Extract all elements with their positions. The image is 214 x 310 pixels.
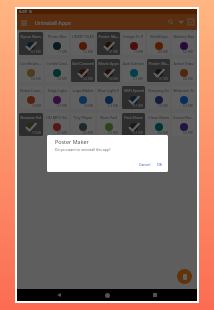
button[interactable]: Apk Extractor [122,59,145,82]
button[interactable]: Tiny Player [71,113,95,136]
button[interactable]: Sleeping So... [147,86,170,109]
staticText: 5.5 MB [183,104,193,108]
staticText: Clean Master [148,115,169,120]
staticText: Fast Share [124,115,143,120]
staticText: Battery Boo... [173,34,194,39]
staticText: Active Inpu... [173,61,194,66]
button[interactable]: Credit Card... [45,59,69,82]
staticText: 4.1 MB [31,50,41,54]
button[interactable]: Poster Ma... [97,32,120,55]
button[interactable]: BirthDays [147,32,170,55]
staticText: 6.8 MB [31,77,41,81]
staticText: 13 MB [134,50,143,54]
staticText: 9.7 MB [57,131,67,135]
staticText: Logo Maker [72,88,94,93]
button[interactable]: Image To P... [122,32,145,55]
button[interactable]: Search [166,17,176,27]
button[interactable]: OK [155,161,165,168]
staticText: Dymo Nam... [20,34,42,39]
staticText: 5.3 MB [108,104,118,108]
button[interactable]: WiFi Speed [122,86,145,109]
button[interactable]: UNZIP FILES [71,32,95,55]
button[interactable]: Sound Rec... [172,113,195,136]
button[interactable]: Video Conv... [19,86,43,109]
staticText: Poster Maker [55,138,89,145]
button[interactable]: Certificate... [19,59,43,82]
staticText: Video Conv... [20,88,42,93]
staticText: Certificate... [20,61,42,66]
staticText: WiFi Speed [124,88,144,93]
button[interactable]: Select all [186,17,196,27]
button[interactable]: Active Inpu... [172,59,195,82]
staticText: 5.0 MB [183,50,193,54]
staticText: Sound Rec... [173,115,194,120]
staticText: 16 MB [84,104,93,108]
staticText: Get Consent [72,61,94,66]
staticText: Note Pad [100,115,117,120]
button[interactable]: Back [53,289,65,301]
button[interactable]: Poster Ma... [147,59,170,82]
button[interactable]: Uninstall selected apps [177,269,192,284]
button[interactable]: Home [101,289,113,301]
staticText: 6.3 MB [133,131,143,135]
button[interactable]: Cancel [137,161,153,168]
staticText: Webtone To... [173,88,194,93]
staticText: 4.4 MB [183,77,193,81]
staticText: Poster Ma... [98,34,119,39]
staticText: 7.6 MB [158,104,168,108]
button[interactable]: HD MP3 Vis... [45,113,69,136]
staticText: 14 MB [109,77,118,81]
staticText: Sleeping So... [148,88,169,93]
staticText: Poster Ma... [148,61,169,66]
staticText: Edge Light [48,88,67,93]
staticText: Browser Ext [20,115,42,120]
button[interactable]: Edge Light [45,86,69,109]
staticText: 21 MB [159,77,168,81]
button[interactable]: Navigation drawer [18,17,29,28]
button[interactable]: Recent apps [149,289,161,301]
staticText: Blue Light Fi... [98,88,119,93]
button[interactable]: Movie Apps [97,59,120,82]
staticText: 21 MB [109,50,118,54]
button[interactable]: Battery Boo... [172,32,195,55]
staticText: 14 MB [32,104,41,108]
staticText: Movie Apps [98,61,119,66]
staticText: Cancel [139,162,151,167]
staticText: 3.1 MB [108,131,118,135]
staticText: BirthDays [150,34,168,39]
staticText: 3.4 MB [83,77,93,81]
staticText: 8.5 MB [158,50,168,54]
staticText: Photo Blur [48,34,67,39]
staticText: 5.2 MB [183,131,193,135]
button[interactable]: Blue Light Fi... [97,86,120,109]
staticText: 6:27 [19,9,27,14]
staticText: 8.8 MB [158,131,168,135]
staticText: Do you want to uninstall this app? [55,147,111,152]
staticText: 6.1 MB [133,104,143,108]
staticText: Uninstall Apps [35,19,71,26]
staticText: Apk Extractor [123,61,144,66]
staticText: OK [157,162,163,167]
staticText: Image To P... [123,34,144,39]
staticText: UNZIP FILES [72,34,94,39]
staticText: 3.7 MB [57,104,67,108]
staticText: 4.9 MB [83,131,93,135]
button[interactable]: Note Pad [97,113,120,136]
button[interactable]: Sort [176,17,186,27]
staticText: 9.2 MB [57,77,67,81]
button[interactable]: Dymo Nam... [19,32,43,55]
staticText: 11 MB [58,50,67,54]
button[interactable]: Photo Blur [45,32,69,55]
button[interactable]: Get Consent [71,59,95,82]
staticText: Credit Card... [46,61,68,66]
button[interactable]: Clean Master [147,113,170,136]
button[interactable]: Browser Ext [19,113,43,136]
button[interactable]: Logo Maker [71,86,95,109]
button[interactable]: Webtone To... [172,86,195,109]
staticText: HD MP3 Vis... [46,115,68,120]
staticText: 7.3 MB [83,50,93,54]
staticText: 2.2 MB [133,77,143,81]
staticText: Tiny Player [73,115,93,120]
staticText: 12 MB [32,131,41,135]
button[interactable]: Fast Share [122,113,145,136]
